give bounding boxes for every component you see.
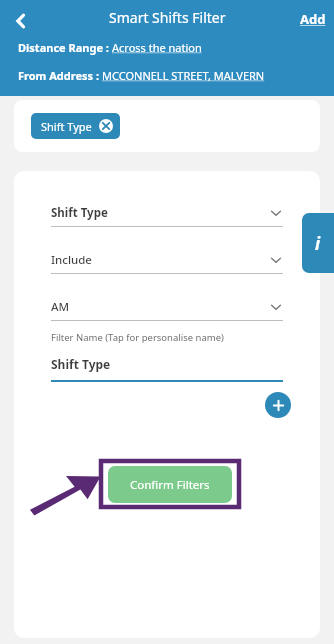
staticText: Smart Shifts Filter (109, 8, 226, 27)
staticText: Filter Name (Tap for personalise name) (51, 331, 224, 344)
staticText: Shift Type (51, 205, 108, 221)
staticText: Shift Type (51, 356, 111, 372)
button[interactable]: Shift Type (31, 113, 120, 139)
staticText: Add (300, 10, 326, 28)
staticText: AM (51, 299, 70, 315)
button[interactable]: MCCONNELL STREET, MALVERN (102, 68, 265, 83)
staticText: From Address : (18, 68, 102, 83)
staticText: Include (51, 252, 92, 268)
staticText: Shift Type (41, 119, 92, 134)
button[interactable]: Add filter (265, 392, 291, 418)
button[interactable]: AM (51, 294, 283, 321)
button[interactable]: Shift Type (51, 356, 283, 372)
staticText: i (315, 232, 321, 255)
button[interactable]: Across the nation (112, 40, 202, 55)
button[interactable]: Info (302, 213, 334, 273)
button[interactable]: Add (292, 6, 334, 32)
staticText: Confirm Filters (130, 477, 210, 493)
button[interactable]: Shift Type (51, 200, 283, 227)
button[interactable]: Confirm Filters (108, 466, 232, 503)
button[interactable]: Back (4, 4, 38, 38)
staticText: Distance Range : (18, 40, 112, 55)
button[interactable]: Include (51, 247, 283, 274)
